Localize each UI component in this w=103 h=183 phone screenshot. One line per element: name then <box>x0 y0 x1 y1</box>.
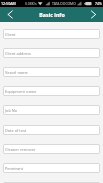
button[interactable]: Date of test <box>3 125 100 135</box>
staticText: Equipment name <box>5 89 37 94</box>
button[interactable]: Penetrant <box>3 163 100 173</box>
button[interactable]: Job No <box>3 105 100 115</box>
button[interactable]: Client <box>3 29 100 39</box>
button[interactable]: Next <box>87 7 103 22</box>
staticText: 0.08K/s <box>25 1 37 6</box>
staticText: Cleaner remover <box>5 147 36 152</box>
staticText: TATA DOCOMO <box>52 1 76 6</box>
staticText: 74% <box>95 1 102 6</box>
staticText: Date of test <box>5 128 27 133</box>
button[interactable]: Developer <box>3 182 100 183</box>
staticText: Client address <box>5 51 31 56</box>
button[interactable]: Back <box>0 7 16 22</box>
staticText: Penetrant <box>5 166 24 171</box>
staticText: Vessel name <box>5 70 28 75</box>
button[interactable]: Equipment name <box>3 86 100 96</box>
button[interactable]: Client address <box>3 48 100 58</box>
button[interactable]: Cleaner remover <box>3 144 100 154</box>
staticText: Job No <box>5 108 18 113</box>
button[interactable]: Vessel name <box>3 67 100 77</box>
staticText: Client <box>5 32 16 37</box>
staticText: Basic info <box>39 11 65 18</box>
staticText: 12:50AM <box>1 1 16 6</box>
